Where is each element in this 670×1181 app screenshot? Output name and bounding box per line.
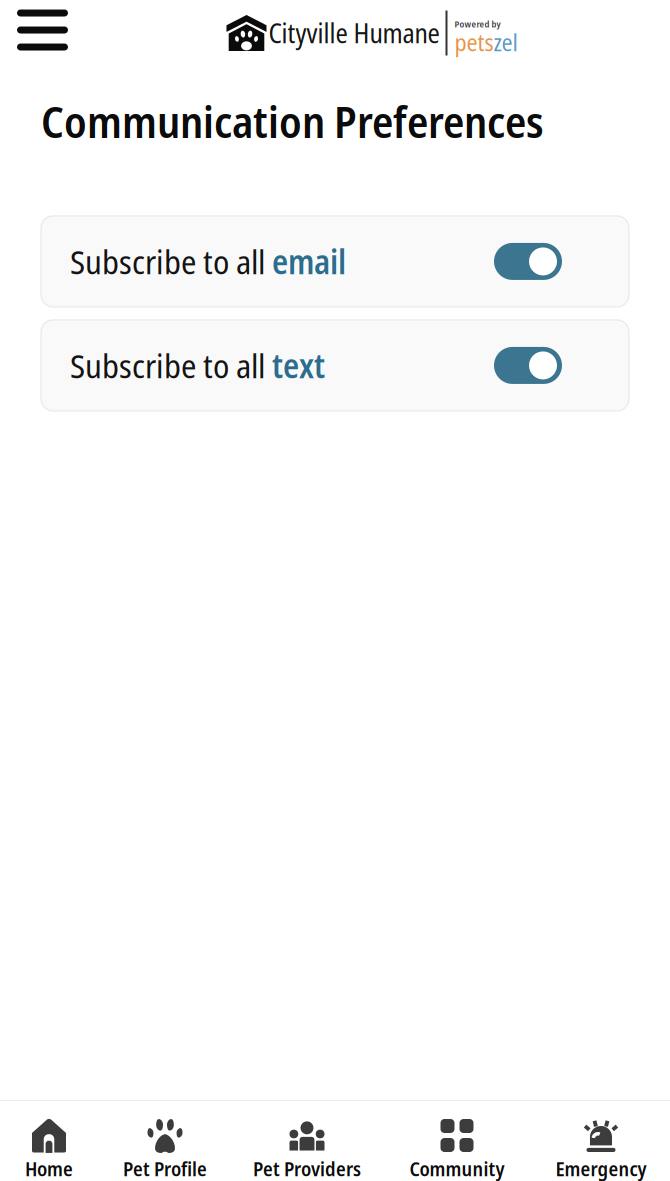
button[interactable]: Home xyxy=(0,1101,98,1181)
staticText: zel xyxy=(493,26,517,58)
staticText: Pet Profile xyxy=(123,1155,207,1181)
staticText: Powered by xyxy=(454,18,500,30)
staticText: Home xyxy=(25,1155,73,1181)
button[interactable]: Pet Providers xyxy=(232,1101,382,1181)
staticText: pets xyxy=(454,26,493,58)
button[interactable]: Subscribe to all xyxy=(41,216,629,307)
button[interactable]: Emergency xyxy=(532,1101,670,1181)
staticText: Communication Preferences xyxy=(41,91,544,151)
button[interactable]: Menu xyxy=(0,6,82,59)
staticText: Pet Providers xyxy=(253,1155,361,1181)
staticText: Subscribe to all xyxy=(70,239,272,284)
staticText: Cityville Humane xyxy=(268,15,439,51)
staticText: Community xyxy=(409,1155,504,1181)
staticText: Subscribe to all xyxy=(70,343,272,388)
staticText: text xyxy=(272,343,325,388)
button[interactable]: Subscribe to all xyxy=(41,320,629,411)
staticText: email xyxy=(272,239,346,284)
button[interactable]: Community xyxy=(382,1101,532,1181)
staticText: Emergency xyxy=(555,1155,646,1181)
button[interactable]: Pet Profile xyxy=(98,1101,232,1181)
